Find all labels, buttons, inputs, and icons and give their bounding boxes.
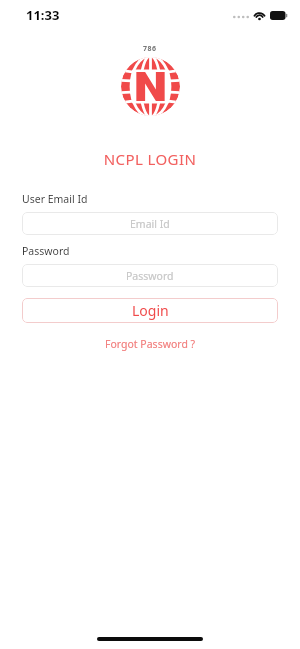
staticText: Password	[126, 269, 174, 283]
button[interactable]: Login	[22, 298, 278, 323]
staticText: User Email Id	[22, 192, 88, 206]
staticText: Login	[132, 301, 169, 320]
staticText: Forgot Password ?	[105, 337, 196, 351]
staticText: 786	[143, 44, 157, 54]
staticText: Email Id	[130, 217, 170, 231]
other: Battery	[270, 11, 288, 20]
button[interactable]: Email Id	[22, 212, 278, 235]
button[interactable]: Forgot Password ?	[22, 335, 278, 353]
other: Wi-Fi	[253, 10, 266, 20]
staticText: Password	[22, 244, 70, 258]
button[interactable]: Password	[22, 264, 278, 287]
staticText: 11:33	[26, 6, 60, 24]
other: NCPL logo	[121, 57, 180, 116]
staticText: NCPL LOGIN	[0, 149, 300, 169]
other: Cellular signal	[233, 11, 249, 19]
